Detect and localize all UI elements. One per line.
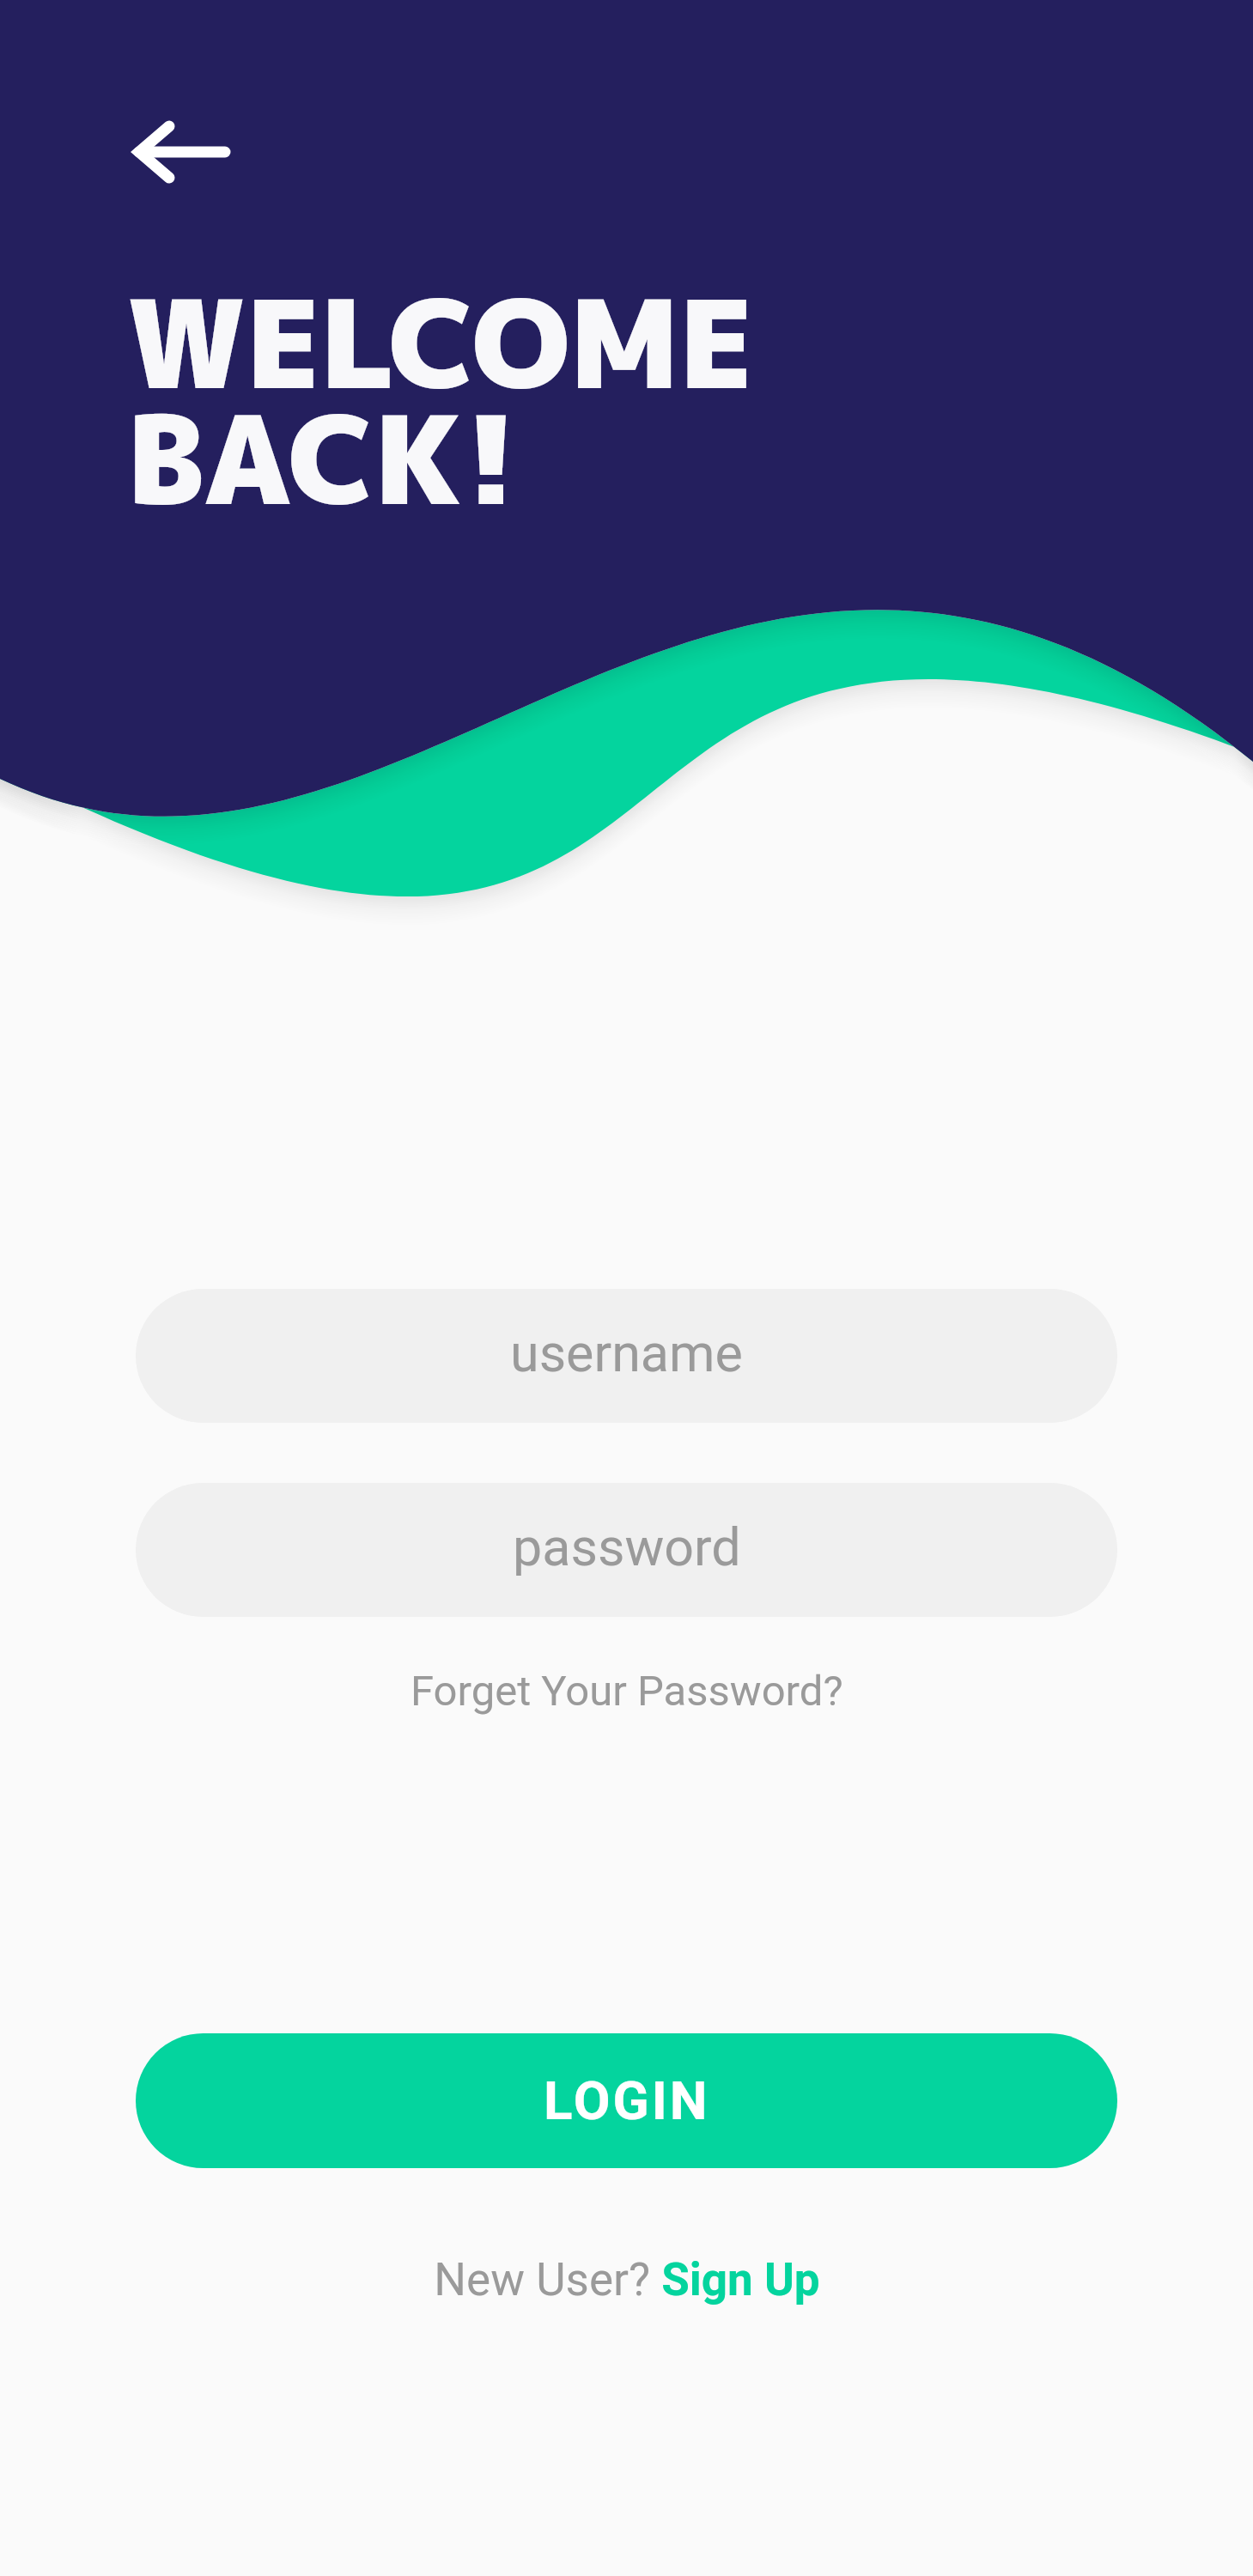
button[interactable]: password [136, 1483, 1117, 1617]
button[interactable]: LOGIN [136, 2033, 1117, 2168]
button[interactable]: Back [100, 108, 246, 254]
button[interactable]: New User? Sign Up [434, 2253, 820, 2306]
staticText: password [513, 1516, 741, 1577]
staticText: Forget Your Password? [411, 1667, 843, 1716]
staticText: LOGIN [544, 2069, 710, 2132]
staticText: WELCOME BACK! [126, 257, 753, 543]
staticText: username [510, 1322, 743, 1383]
staticText: New User? Sign Up [434, 2253, 820, 2306]
button[interactable]: Forget Your Password? [136, 1667, 1117, 1716]
button[interactable]: username [136, 1289, 1117, 1423]
